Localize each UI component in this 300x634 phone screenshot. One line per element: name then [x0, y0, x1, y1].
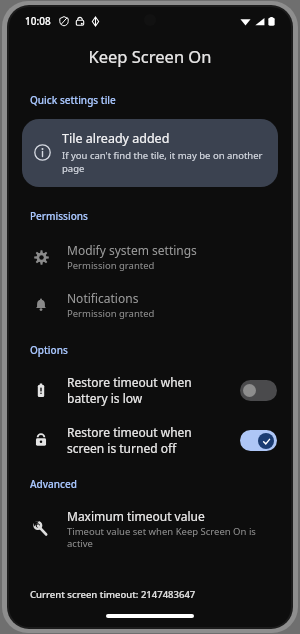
staticText: Modify system settings	[67, 242, 197, 258]
staticText: Restore timeout when screen is turned of…	[67, 424, 232, 456]
button[interactable]: On	[240, 430, 277, 451]
staticText: Restore timeout when battery is low	[67, 374, 232, 406]
staticText: Notifications	[67, 290, 139, 306]
staticText: Current screen timeout: 2147483647	[30, 588, 196, 601]
staticText: Advanced	[30, 477, 77, 491]
other: Notifications	[30, 294, 52, 316]
staticText: Quick settings tile	[30, 93, 116, 107]
staticText: Permission granted	[67, 259, 155, 272]
staticText: Permissions	[30, 209, 88, 223]
button[interactable]: Lock	[9, 415, 291, 465]
staticText: 10:08	[25, 14, 51, 28]
other: Maximum timeout value	[30, 518, 52, 540]
staticText: Timeout value set when Keep Screen On is…	[67, 525, 275, 550]
button[interactable]: Tile already added	[22, 119, 278, 187]
staticText: Options	[30, 343, 68, 357]
button[interactable]: Modify system settings	[9, 233, 291, 281]
staticText: Permission granted	[67, 307, 155, 320]
staticText: Maximum timeout value	[67, 508, 205, 524]
staticText: Tile already added	[62, 130, 170, 147]
other: Modify system settings	[30, 246, 52, 268]
button[interactable]: Notifications	[9, 281, 291, 329]
staticText: If you can't find the tile, it may be on…	[62, 149, 264, 175]
button[interactable]: Maximum timeout value	[9, 499, 291, 559]
button[interactable]: Battery	[9, 365, 291, 415]
staticText: Keep Screen On	[9, 45, 291, 67]
other: Battery	[30, 379, 52, 401]
button[interactable]: Off	[240, 380, 277, 401]
other: Lock	[30, 429, 52, 451]
